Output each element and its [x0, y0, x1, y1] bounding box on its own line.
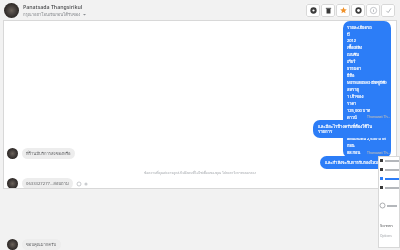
- staticText: Options: [380, 234, 392, 238]
- button[interactable]: ที่ร้านมีบริการส่งของหรือ: [7, 148, 75, 159]
- button[interactable]: 0633327277...สอบถาม: [7, 178, 88, 189]
- staticText: รายละเอียดรถ: [347, 24, 372, 30]
- staticText: Thanawat Th...: [367, 150, 391, 155]
- staticText: ราคา: [347, 100, 357, 106]
- staticText: ขอบคุณมากครับ: [26, 241, 57, 248]
- staticText: Thanawat Th...: [367, 114, 391, 119]
- staticText: ข้อความที่คุณส่งอาจถูกส่งไปยังคนที่ไม่ใช…: [144, 170, 256, 175]
- button[interactable]: Settings: [306, 4, 320, 17]
- staticText: 1 เจ้าของ: [347, 93, 364, 99]
- staticText: เงินดาวน์ 0 บาท: [347, 121, 375, 127]
- staticText: Panatsada Thangsirikul: [23, 3, 83, 10]
- button[interactable]: Panatsada Thangsirikul: [4, 3, 86, 18]
- button[interactable]: Info: [366, 4, 380, 17]
- staticText: กรุณาอย่าโอนเงินก่อนได้รับของ: [23, 11, 81, 18]
- staticText: Screen: [380, 223, 393, 228]
- staticText: 2012: [347, 38, 357, 43]
- staticText: ลหรายุ: [347, 86, 359, 92]
- staticText: ยี่ห้อ: [347, 72, 355, 78]
- staticText: 125,000 บาท: [347, 107, 371, 113]
- staticText: 88 ก่อน: [347, 149, 361, 155]
- staticText: ปี: [347, 31, 350, 37]
- staticText: 0633327277...สอบถาม: [26, 180, 69, 187]
- button[interactable]: ขอบคุณมากครับ: [7, 239, 400, 250]
- staticText: ผ่อนเริ่มต้น 2,530 บาท: [347, 135, 386, 141]
- staticText: ดาวน์: [347, 114, 357, 120]
- button[interactable]: Delete: [321, 4, 335, 17]
- button[interactable]: Screen: [378, 156, 400, 248]
- staticText: เกียร์: [347, 58, 356, 64]
- staticText: MITSUBISHI (มิตซูบิชิ): [347, 79, 387, 85]
- button[interactable]: และมีอะไรบ้างครับที่ต้องใช้ในรายการ: [313, 120, 391, 138]
- staticText: ธรรมดา: [347, 65, 362, 71]
- staticText: ก่อน: [347, 142, 355, 148]
- staticText: ที่ร้านมีบริการส่งของหรือ: [26, 150, 71, 157]
- button[interactable]: Star: [336, 4, 350, 17]
- staticText: เบนซิน: [347, 51, 360, 57]
- button[interactable]: Done: [381, 4, 395, 17]
- button[interactable]: และกำลังจะรับการรับรองไหมครับ: [320, 156, 391, 169]
- staticText: และกำลังจะรับการรับรองไหมครับ: [325, 159, 386, 166]
- button[interactable]: รายละเอียดรถ: [343, 21, 391, 158]
- staticText: เชื้อเพลิง: [347, 44, 362, 50]
- staticText: และมีอะไรบ้างครับที่ต้องใช้ในรายการ: [318, 123, 386, 135]
- button[interactable]: Mute: [351, 4, 365, 17]
